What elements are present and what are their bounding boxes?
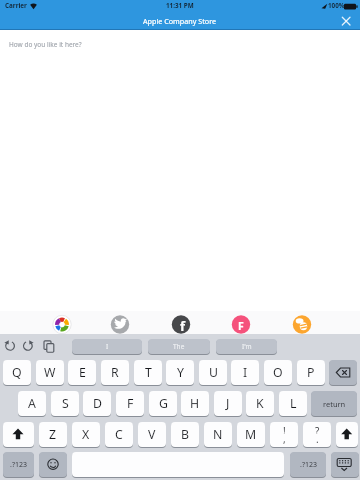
- button[interactable]: [21, 339, 35, 353]
- staticText: 11:31 PM: [166, 1, 194, 10]
- staticText: I: [243, 364, 248, 381]
- button[interactable]: [171, 315, 191, 335]
- staticText: C: [115, 426, 123, 443]
- staticText: P: [307, 364, 315, 381]
- button[interactable]: [72, 339, 142, 354]
- button[interactable]: S: [51, 391, 79, 416]
- button[interactable]: [270, 422, 298, 447]
- staticText: U: [209, 364, 218, 381]
- button[interactable]: N: [204, 422, 232, 447]
- staticText: The: [173, 342, 185, 351]
- button[interactable]: Y: [166, 360, 194, 385]
- staticText: .?123: [10, 460, 27, 470]
- button[interactable]: [329, 360, 357, 385]
- button[interactable]: J: [214, 391, 242, 416]
- staticText: Q: [12, 364, 22, 381]
- button[interactable]: F: [116, 391, 144, 416]
- staticText: G: [159, 395, 168, 412]
- button[interactable]: T: [134, 360, 162, 385]
- button[interactable]: return: [311, 391, 357, 416]
- button[interactable]: [336, 12, 356, 30]
- staticText: S: [62, 395, 69, 412]
- button[interactable]: Q: [3, 360, 31, 385]
- staticText: T: [145, 364, 152, 381]
- button[interactable]: .?123: [290, 452, 326, 477]
- staticText: A: [28, 395, 36, 412]
- button[interactable]: P: [297, 360, 325, 385]
- staticText: D: [93, 395, 102, 412]
- button[interactable]: [303, 422, 331, 447]
- button[interactable]: [292, 315, 312, 335]
- staticText: W: [44, 364, 56, 381]
- staticText: ,: [283, 432, 286, 444]
- staticText: How do you like it here?: [9, 40, 82, 49]
- staticText: I'm: [242, 342, 252, 351]
- button[interactable]: K: [246, 391, 274, 416]
- button[interactable]: H: [181, 391, 209, 416]
- button[interactable]: [231, 315, 251, 335]
- button[interactable]: [336, 422, 358, 447]
- button[interactable]: M: [237, 422, 265, 447]
- staticText: I: [106, 342, 109, 351]
- button[interactable]: W: [36, 360, 64, 385]
- button[interactable]: [331, 452, 359, 477]
- button[interactable]: Z: [39, 422, 67, 447]
- button[interactable]: U: [199, 360, 227, 385]
- staticText: Y: [177, 364, 184, 381]
- button[interactable]: [3, 339, 17, 353]
- button[interactable]: C: [105, 422, 133, 447]
- button[interactable]: R: [101, 360, 129, 385]
- staticText: B: [181, 426, 189, 443]
- button[interactable]: G: [149, 391, 177, 416]
- staticText: F: [238, 319, 244, 333]
- button[interactable]: E: [68, 360, 96, 385]
- staticText: N: [213, 426, 223, 443]
- staticText: H: [190, 395, 200, 412]
- staticText: Apple Company Store: [143, 16, 217, 26]
- staticText: K: [256, 395, 264, 412]
- button[interactable]: L: [279, 391, 307, 416]
- staticText: E: [79, 364, 86, 381]
- button[interactable]: [39, 452, 67, 477]
- staticText: F: [127, 395, 134, 412]
- staticText: f: [180, 317, 186, 335]
- staticText: ?: [315, 424, 320, 434]
- button[interactable]: .?123: [3, 452, 34, 477]
- button[interactable]: [148, 339, 210, 354]
- button[interactable]: [110, 315, 130, 335]
- staticText: O: [273, 364, 283, 381]
- button[interactable]: [216, 339, 277, 354]
- staticText: return: [323, 399, 346, 409]
- button[interactable]: [3, 422, 34, 447]
- button[interactable]: B: [171, 422, 199, 447]
- button[interactable]: A: [18, 391, 46, 416]
- button[interactable]: I: [231, 360, 259, 385]
- button[interactable]: [41, 339, 55, 353]
- staticText: L: [290, 395, 297, 412]
- button[interactable]: X: [72, 422, 100, 447]
- staticText: J: [226, 395, 230, 412]
- button[interactable]: [52, 315, 72, 335]
- staticText: !: [283, 424, 286, 434]
- staticText: R: [111, 364, 119, 381]
- staticText: M: [245, 426, 257, 443]
- staticText: X: [82, 426, 90, 443]
- button[interactable]: D: [83, 391, 111, 416]
- staticText: 100%: [328, 1, 345, 10]
- button[interactable]: O: [264, 360, 292, 385]
- button[interactable]: V: [138, 422, 166, 447]
- staticText: Z: [49, 426, 57, 443]
- staticText: V: [148, 426, 156, 443]
- staticText: Carrier: [5, 1, 27, 10]
- staticText: .: [316, 432, 319, 444]
- staticText: .?123: [300, 460, 317, 470]
